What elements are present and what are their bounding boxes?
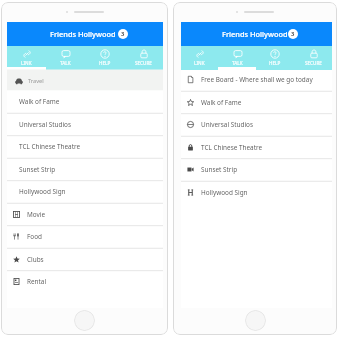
staticText: Universal Studios: [19, 120, 71, 129]
staticText: LINK: [21, 60, 32, 66]
staticText: Hollywood Sign: [19, 187, 66, 196]
button[interactable]: TALK: [218, 46, 256, 70]
staticText: Walk of Fame: [19, 97, 60, 106]
staticText: Walk of Fame: [201, 98, 242, 107]
button[interactable]: TALK: [46, 46, 85, 70]
button[interactable]: Sunset Strip: [181, 158, 332, 181]
staticText: Friends Hollywood: [222, 29, 288, 39]
button[interactable]: Hollywood Sign: [181, 181, 332, 204]
button[interactable]: LINK: [7, 46, 46, 70]
button[interactable]: Home: [245, 310, 266, 331]
button[interactable]: HELP: [85, 46, 124, 70]
button[interactable]: Universal Studios: [7, 113, 163, 136]
button[interactable]: LINK: [181, 46, 218, 70]
button[interactable]: SECURE: [124, 46, 163, 70]
staticText: Sunset Strip: [201, 165, 238, 174]
button[interactable]: Travel: [7, 70, 163, 91]
staticText: Food: [27, 232, 42, 241]
button[interactable]: TCL Chinese Theatre: [181, 136, 332, 159]
button[interactable]: HELP: [256, 46, 294, 70]
button[interactable]: Universal Studios: [181, 113, 332, 136]
button[interactable]: Rental: [7, 270, 163, 293]
staticText: 3: [121, 30, 125, 38]
staticText: TALK: [60, 60, 71, 66]
button[interactable]: Notifications: [118, 29, 128, 39]
button[interactable]: TCL Chinese Theatre: [7, 135, 163, 158]
staticText: Clubs: [27, 255, 44, 264]
button[interactable]: Walk of Fame: [181, 91, 332, 114]
staticText: 3: [291, 30, 295, 38]
staticText: SECURE: [305, 60, 322, 66]
staticText: Travel: [28, 77, 44, 85]
staticText: Rental: [27, 277, 47, 286]
staticText: HELP: [99, 60, 111, 66]
staticText: Universal Studios: [201, 120, 253, 129]
staticText: LINK: [194, 60, 205, 66]
staticText: TCL Chinese Theatre: [19, 142, 81, 151]
staticText: Sunset Strip: [19, 165, 56, 174]
button[interactable]: Clubs: [7, 248, 163, 271]
button[interactable]: Food: [7, 225, 163, 248]
staticText: TCL Chinese Theatre: [201, 143, 263, 152]
button[interactable]: SECURE: [294, 46, 332, 70]
button[interactable]: Walk of Fame: [7, 90, 163, 113]
staticText: TALK: [232, 60, 243, 66]
staticText: Friends Hollywood: [50, 29, 116, 39]
button[interactable]: Notifications: [288, 29, 298, 39]
staticText: HELP: [269, 60, 281, 66]
staticText: Hollywood Sign: [201, 188, 248, 197]
staticText: Movie: [27, 210, 46, 219]
button[interactable]: Free Board - Where shall we go today: [181, 68, 332, 91]
button[interactable]: Movie: [7, 203, 163, 226]
staticText: Free Board - Where shall we go today: [201, 75, 313, 84]
button[interactable]: Hollywood Sign: [7, 180, 163, 203]
button[interactable]: Sunset Strip: [7, 158, 163, 181]
button[interactable]: Home: [74, 310, 95, 331]
staticText: SECURE: [135, 60, 152, 66]
